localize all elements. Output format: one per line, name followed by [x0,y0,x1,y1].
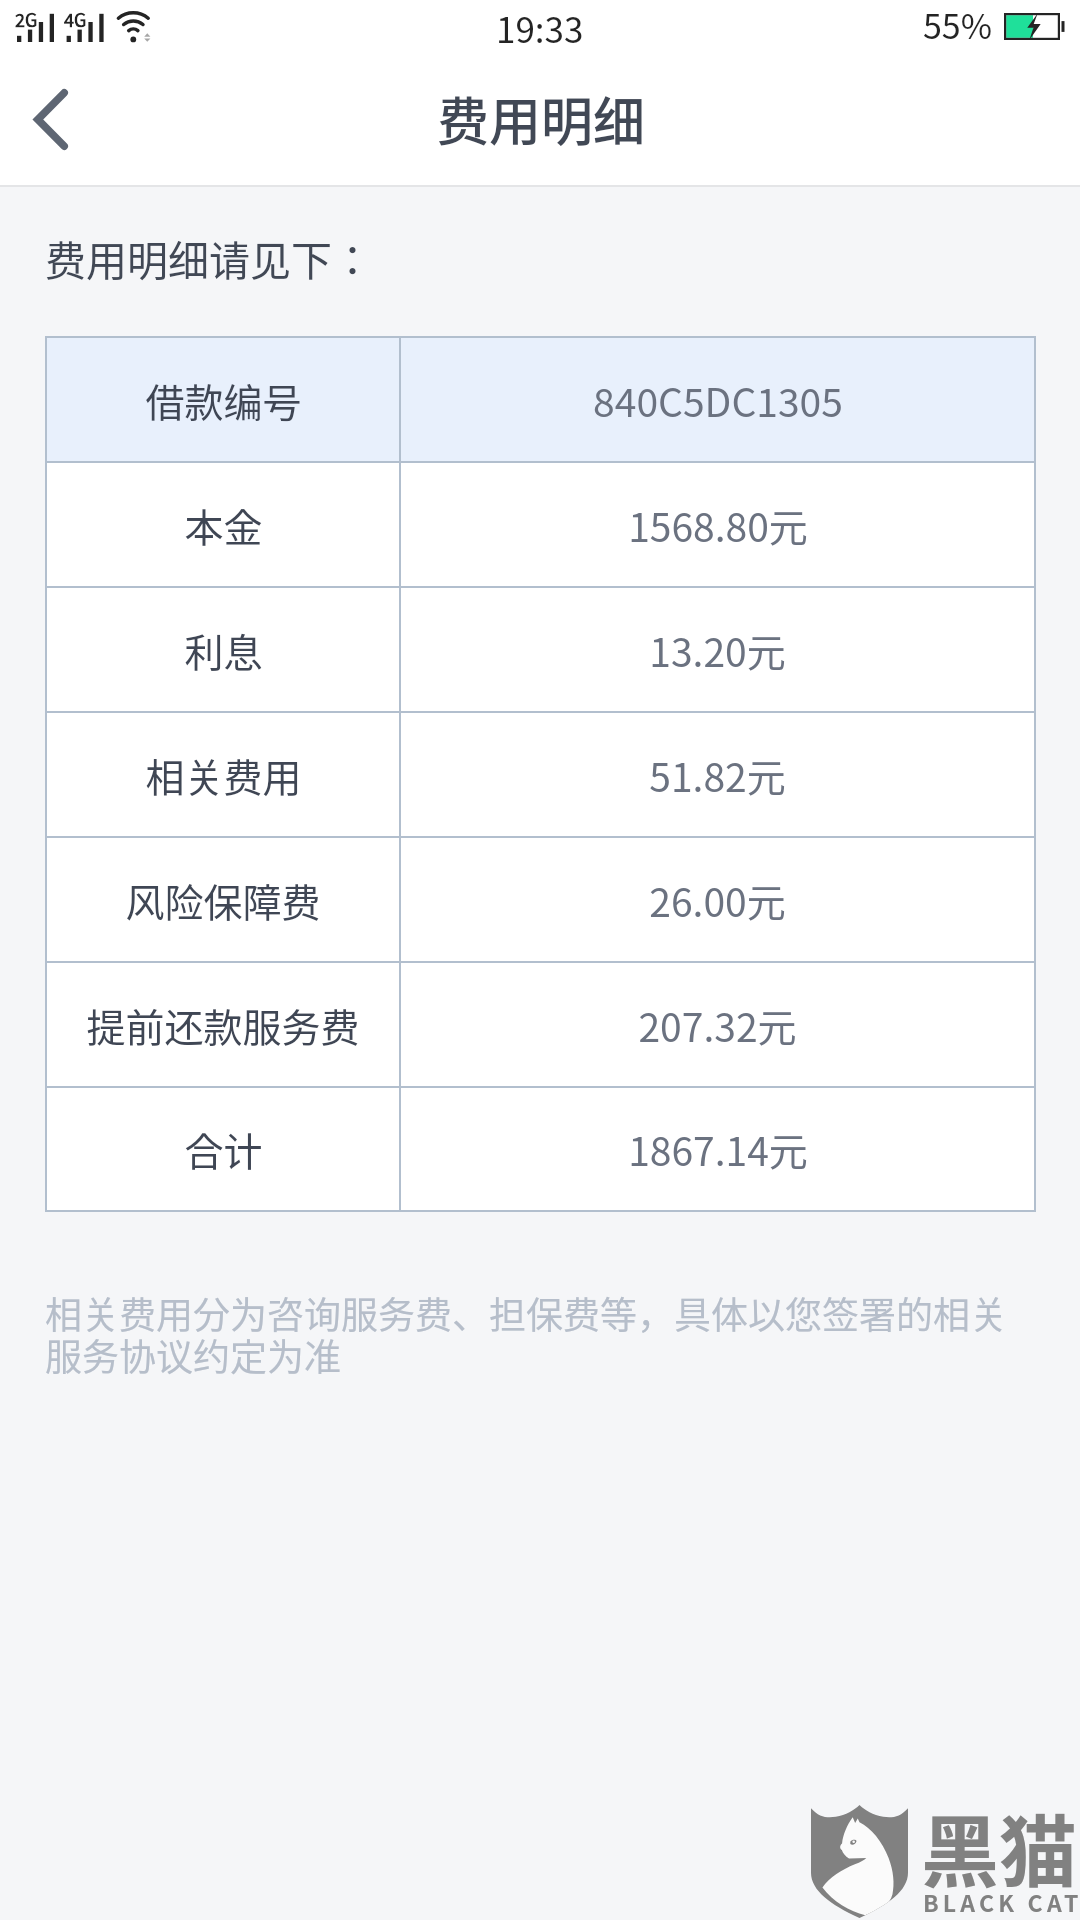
staticText: 13.20元 [649,622,786,678]
staticText: 黑猫 [921,1791,1078,1904]
staticText: 4G [64,6,87,32]
staticText: 费用明细 [437,81,646,156]
staticText: 2G [15,6,38,32]
staticText: BLACK CAT [923,1885,1080,1918]
staticText: 51.82元 [649,747,786,803]
staticText: 55% [923,0,993,49]
staticText: 1867.14元 [628,1121,808,1177]
staticText: 26.00元 [649,872,786,928]
staticText: 本金 [184,497,263,553]
staticText: 利息 [184,622,263,678]
button[interactable]: Back [0,66,102,181]
staticText: 19:33 [496,2,584,53]
staticText: 1568.80元 [628,497,808,553]
staticText: 840C5DC1305 [593,372,843,428]
staticText: 风险保障费 [125,872,321,928]
other: Black Cat logo [811,1805,908,1918]
staticText: 费用明细请见下： [45,228,373,287]
staticText: 相关费用分为咨询服务费、担保费等，具体以您签署的相关服务协议约定为准 [45,1286,1007,1381]
staticText: 207.32元 [638,997,797,1053]
staticText: 借款编号 [145,372,302,428]
staticText: 相关费用 [145,747,302,803]
staticText: 提前还款服务费 [86,997,360,1053]
staticText: 合计 [184,1121,263,1177]
